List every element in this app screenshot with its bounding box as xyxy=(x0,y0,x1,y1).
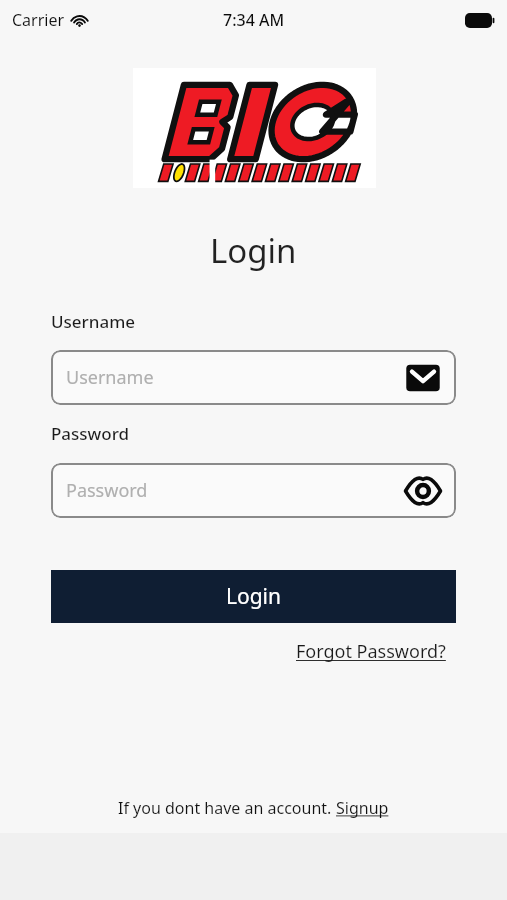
staticText: Login xyxy=(226,582,282,611)
button[interactable]: Password xyxy=(51,463,456,518)
staticText: Username xyxy=(51,310,135,333)
staticText: Forgot Password? xyxy=(296,639,446,664)
button[interactable]: Email xyxy=(404,359,442,397)
staticText: If you dont have an account. xyxy=(118,797,336,819)
staticText: Password xyxy=(51,422,130,445)
button[interactable]: Login xyxy=(51,570,456,623)
staticText: Carrier xyxy=(12,9,65,31)
button[interactable]: Show password xyxy=(404,472,442,510)
staticText: 7:34 AM xyxy=(223,9,285,31)
staticText: Password xyxy=(66,478,148,503)
staticText: Signup xyxy=(336,797,389,819)
button[interactable]: Signup xyxy=(336,797,389,819)
staticText: Login xyxy=(210,228,297,273)
button[interactable]: Username xyxy=(51,350,456,405)
button[interactable]: Forgot Password? xyxy=(294,637,448,666)
staticText: Username xyxy=(66,365,154,390)
